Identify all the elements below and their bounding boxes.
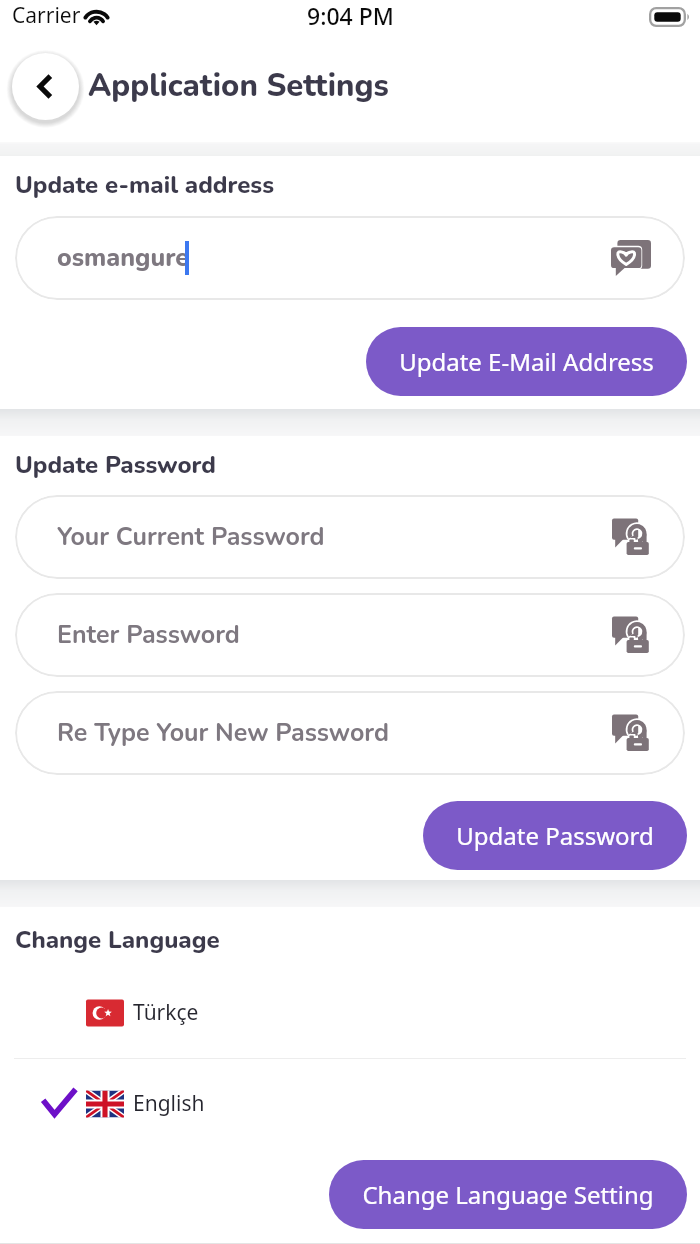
staticText: Update Password <box>15 449 216 482</box>
staticText: Türkçe <box>133 998 199 1027</box>
staticText: Application Settings <box>88 65 389 107</box>
button[interactable]: English <box>0 1080 700 1126</box>
staticText: Update Password <box>456 819 654 852</box>
staticText: English <box>133 1089 205 1118</box>
staticText: Update e-mail address <box>15 169 274 202</box>
button[interactable]: Update E-Mail Address <box>366 327 687 396</box>
staticText: osmangure <box>57 241 189 275</box>
button[interactable]: Türkçe <box>0 989 700 1035</box>
button[interactable]: Re Type Your New Password <box>15 691 685 775</box>
button[interactable]: Back <box>4 45 87 128</box>
staticText: Change Language <box>15 924 220 957</box>
button[interactable]: osmangure <box>15 216 685 300</box>
staticText: Your Current Password <box>57 520 325 554</box>
staticText: Change Language Setting <box>362 1178 654 1211</box>
button[interactable]: Enter Password <box>15 593 685 677</box>
staticText: Re Type Your New Password <box>57 716 389 750</box>
button[interactable]: Update Password <box>423 801 687 870</box>
staticText: Enter Password <box>57 618 240 652</box>
staticText: 9:04 PM <box>307 0 394 31</box>
button[interactable]: Your Current Password <box>15 495 685 579</box>
button[interactable]: Change Language Setting <box>329 1160 687 1229</box>
staticText: Carrier <box>12 1 81 30</box>
staticText: Update E-Mail Address <box>399 345 654 378</box>
